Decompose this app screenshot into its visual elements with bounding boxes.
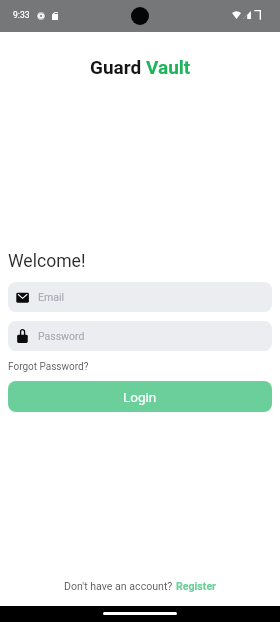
staticText: Vault [146, 56, 191, 78]
button[interactable]: Login [8, 381, 272, 412]
button[interactable]: Register [176, 580, 216, 592]
button[interactable]: Password [8, 321, 272, 351]
button[interactable]: Email [8, 282, 272, 312]
staticText: Guard [90, 56, 146, 78]
staticText: Welcome! [8, 251, 86, 272]
staticText: Email [38, 291, 64, 303]
staticText: Don't have an account? [64, 580, 176, 592]
staticText: Password [38, 330, 85, 342]
staticText: 9:33 [13, 10, 30, 20]
button[interactable]: Forgot Password? [8, 361, 89, 373]
staticText: Login [123, 389, 157, 405]
other: Settings [37, 12, 45, 20]
